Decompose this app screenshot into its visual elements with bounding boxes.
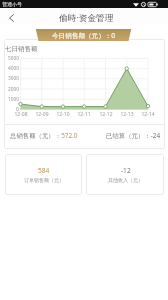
staticText: 5000: [8, 55, 19, 62]
staticText: 1000: [8, 96, 19, 103]
staticText: -12: [121, 166, 131, 175]
button[interactable]: 584: [5, 154, 82, 195]
staticText: 4000: [8, 65, 19, 72]
staticText: 584: [38, 166, 50, 175]
staticText: 12-14: [141, 111, 155, 118]
staticText: 0: [16, 106, 19, 113]
button[interactable]: Back: [0, 10, 22, 26]
staticText: 普通小号: [2, 1, 22, 7]
staticText: 12-08: [14, 111, 28, 118]
staticText: 12-10: [56, 111, 70, 118]
staticText: 订单销售额（元）: [24, 177, 64, 183]
staticText: 12-09: [35, 111, 49, 118]
button[interactable]: -12: [86, 154, 164, 195]
staticText: 12-12: [99, 111, 113, 118]
staticText: 其他收入（元）: [108, 177, 143, 183]
staticText: 已结算（元）：-24: [106, 131, 161, 140]
staticText: 3000: [8, 75, 19, 82]
button[interactable]: 今日销售额（元）：0: [35, 29, 132, 41]
staticText: 2000: [8, 86, 19, 93]
staticText: 七日销售额: [5, 45, 38, 53]
staticText: 今日销售额（元）：0: [52, 31, 116, 40]
staticText: 12-11: [77, 111, 91, 118]
staticText: 12-13: [120, 111, 134, 118]
staticText: 偷時·资金管理: [59, 12, 114, 24]
staticText: 总销售额（元）：572.0: [10, 131, 78, 140]
